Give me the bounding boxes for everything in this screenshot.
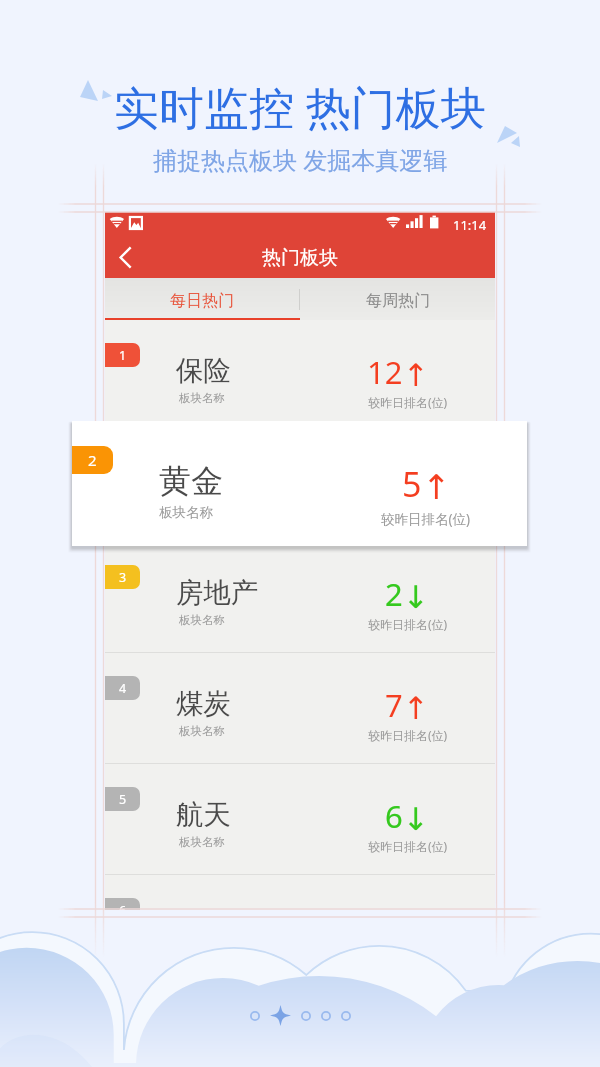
staticText: 6 bbox=[385, 795, 403, 837]
staticText: ↑ bbox=[403, 357, 429, 393]
button[interactable]: 2 bbox=[105, 431, 495, 542]
staticText: ↓ bbox=[403, 801, 429, 837]
staticText: 1 bbox=[119, 347, 127, 364]
staticText: 3 bbox=[119, 569, 127, 586]
staticText: 黄金 bbox=[159, 461, 223, 501]
staticText: 每周热门 bbox=[366, 291, 430, 311]
staticText: 2 bbox=[385, 573, 403, 615]
staticText: 房地产 bbox=[176, 576, 259, 611]
staticText: 实时监控 热门板块 bbox=[114, 76, 486, 137]
staticText: 煤炭 bbox=[176, 687, 231, 722]
staticText: ↑ bbox=[422, 467, 451, 507]
staticText: 捕捉热点板块 发掘本真逻辑 bbox=[153, 143, 448, 176]
button[interactable]: 4 bbox=[105, 653, 495, 764]
button[interactable]: 5 bbox=[105, 764, 495, 875]
staticText: 板块名称 bbox=[179, 391, 225, 405]
staticText: 板块名称 bbox=[159, 504, 213, 521]
staticText: 较昨日排名(位) bbox=[368, 394, 448, 410]
staticText: 板块名称 bbox=[179, 835, 225, 849]
button[interactable]: 1 bbox=[105, 320, 495, 431]
staticText: 7 bbox=[385, 684, 403, 726]
staticText: ↓ bbox=[403, 579, 429, 615]
staticText: 每日热门 bbox=[170, 291, 234, 311]
staticText: 12 bbox=[367, 351, 403, 393]
staticText: 5 bbox=[402, 461, 422, 507]
staticText: 保险 bbox=[176, 354, 231, 389]
staticText: ↑ bbox=[403, 690, 429, 726]
staticText: 5 bbox=[119, 791, 127, 808]
staticText: 2 bbox=[88, 450, 97, 470]
button[interactable]: 每周热门 bbox=[300, 278, 495, 320]
button[interactable]: 2 bbox=[72, 421, 527, 546]
button[interactable]: 6 bbox=[105, 875, 495, 910]
staticText: 较昨日排名(位) bbox=[368, 616, 448, 632]
staticText: 较昨日排名(位) bbox=[368, 727, 448, 743]
staticText: 板块名称 bbox=[179, 724, 225, 738]
button[interactable]: 每日热门 bbox=[105, 278, 299, 320]
staticText: 板块名称 bbox=[179, 613, 225, 627]
staticText: 6 bbox=[119, 902, 127, 910]
staticText: 较昨日排名(位) bbox=[381, 510, 471, 528]
staticText: 航天 bbox=[176, 798, 231, 833]
button[interactable]: Back bbox=[105, 238, 147, 278]
staticText: 较昨日排名(位) bbox=[368, 838, 448, 854]
button[interactable]: 3 bbox=[105, 542, 495, 653]
staticText: 4 bbox=[119, 680, 127, 697]
staticText: 11:14 bbox=[453, 216, 487, 234]
staticText: 热门板块 bbox=[262, 246, 338, 270]
